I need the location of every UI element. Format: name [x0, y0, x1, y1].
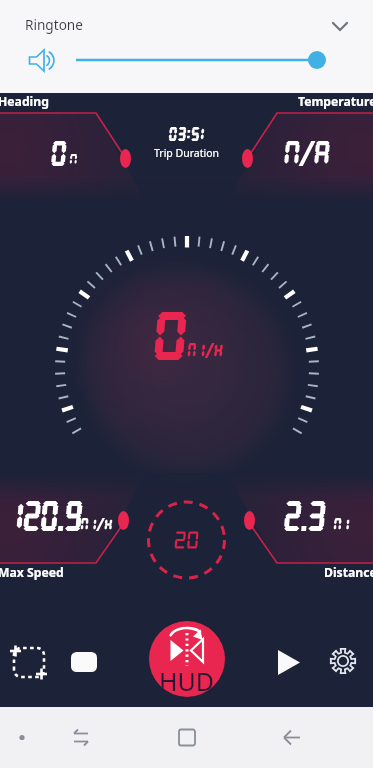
- button[interactable]: Settings: [325, 643, 361, 679]
- staticText: Trip Duration: [154, 146, 220, 160]
- staticText: Distance: [324, 564, 373, 581]
- staticText: Temperature: [298, 93, 373, 110]
- button[interactable]: Add region: [8, 643, 52, 687]
- staticText: Heading: [0, 93, 49, 110]
- button[interactable]: Expand: [323, 9, 357, 43]
- staticText: Max Speed: [0, 564, 64, 581]
- staticText: HUD: [159, 664, 215, 697]
- button[interactable]: Display size: [66, 647, 102, 683]
- button[interactable]: Start: [272, 643, 306, 677]
- staticText: Ringtone: [25, 15, 83, 34]
- button[interactable]: HUD mode: [149, 621, 225, 697]
